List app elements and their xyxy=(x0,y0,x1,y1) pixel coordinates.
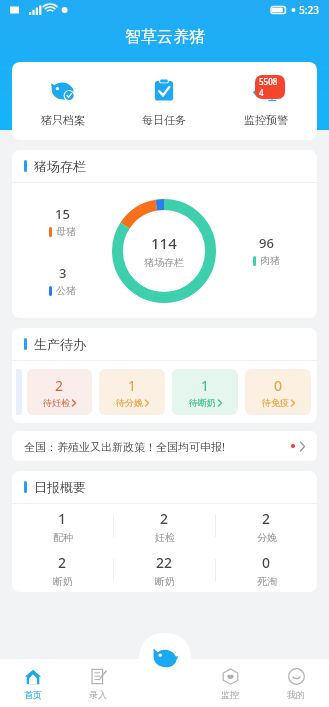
staticText: 待免疫 xyxy=(262,397,289,408)
staticText: 分娩 xyxy=(257,531,277,544)
staticText: 断奶 xyxy=(53,575,73,588)
button[interactable]: 我的 xyxy=(263,659,329,707)
staticText: 22 xyxy=(156,553,173,572)
staticText: 96 xyxy=(259,234,274,252)
staticText: 猪场存栏 xyxy=(144,256,184,269)
staticText: 0 xyxy=(262,553,271,572)
button[interactable]: 1 xyxy=(99,369,165,415)
button[interactable]: 0 xyxy=(216,548,317,592)
staticText: 2 xyxy=(58,553,67,572)
staticText: 断奶 xyxy=(155,575,175,588)
button[interactable]: 1 xyxy=(172,369,238,415)
staticText: 0 xyxy=(274,376,283,395)
staticText: 1 xyxy=(128,376,137,395)
button[interactable]: 全国：养殖业又出新政策！全国均可申报! xyxy=(12,431,317,461)
button[interactable]: 0 xyxy=(245,369,311,415)
staticText: 死淘 xyxy=(257,575,277,588)
button[interactable]: 每日任务 xyxy=(113,62,215,140)
staticText: 55084 xyxy=(259,76,281,98)
staticText: 1 xyxy=(201,376,210,395)
staticText: 录入 xyxy=(89,689,107,700)
button[interactable]: 2 xyxy=(114,504,215,548)
button[interactable]: 55084 xyxy=(215,62,317,140)
staticText: 待断奶 xyxy=(189,397,216,408)
button[interactable]: 2 xyxy=(12,548,113,592)
button[interactable]: Add record xyxy=(142,634,188,680)
staticText: 妊检 xyxy=(155,531,175,544)
staticText: 2 xyxy=(55,376,64,395)
staticText: 2 xyxy=(262,509,271,528)
staticText: 我的 xyxy=(287,689,305,700)
staticText: 公猪 xyxy=(56,284,76,297)
staticText: 全国：养殖业又出新政策！全国均可申报! xyxy=(24,439,225,454)
staticText: 监控预警 xyxy=(244,113,288,127)
button[interactable]: 录入 xyxy=(65,659,131,707)
button[interactable]: 2 xyxy=(27,369,92,415)
staticText: 1 xyxy=(58,509,67,528)
staticText: 日报概要 xyxy=(34,479,86,495)
staticText: 生产待办 xyxy=(34,336,86,352)
staticText: 监控 xyxy=(221,689,239,700)
button[interactable]: 监控 xyxy=(197,659,263,707)
staticText: 待妊检 xyxy=(43,397,70,408)
staticText: 配种 xyxy=(53,531,73,544)
staticText: 114 xyxy=(151,233,177,253)
button[interactable]: 猪只档案 xyxy=(12,62,113,140)
staticText: 首页 xyxy=(24,689,42,700)
staticText: 15 xyxy=(55,205,70,223)
staticText: 母猪 xyxy=(56,225,76,238)
staticText: 2 xyxy=(160,509,169,528)
staticText: 5:23 xyxy=(299,3,319,17)
button[interactable]: 2 xyxy=(216,504,317,548)
button[interactable]: 1 xyxy=(12,504,113,548)
staticText: 待分娩 xyxy=(116,397,143,408)
staticText: 3 xyxy=(59,264,67,282)
button[interactable]: 22 xyxy=(114,548,215,592)
button[interactable]: 首页 xyxy=(0,659,65,707)
staticText: 每日任务 xyxy=(142,113,186,127)
staticText: 猪场存栏 xyxy=(34,158,86,174)
staticText: 猪只档案 xyxy=(41,113,85,127)
staticText: 肉猪 xyxy=(260,254,280,267)
staticText: 智草云养猪 xyxy=(125,27,205,47)
